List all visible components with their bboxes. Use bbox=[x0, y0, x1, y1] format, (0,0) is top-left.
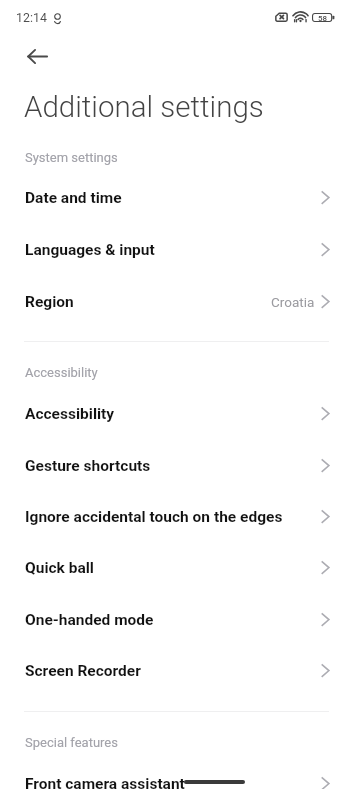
staticText: Additional settings bbox=[24, 90, 264, 125]
staticText: System settings bbox=[25, 150, 118, 165]
staticText: 12:14 bbox=[16, 10, 47, 25]
button[interactable]: Front camera assistant bbox=[0, 758, 355, 789]
staticText: Ignore accidental touch on the edges bbox=[25, 508, 283, 526]
staticText: One-handed mode bbox=[25, 611, 154, 629]
staticText: Accessibility bbox=[25, 365, 98, 380]
button[interactable]: Screen Recorder bbox=[0, 645, 355, 697]
staticText: Croatia bbox=[271, 294, 315, 310]
staticText: Screen Recorder bbox=[25, 662, 141, 680]
staticText: Quick ball bbox=[25, 559, 94, 577]
staticText: Gesture shortcuts bbox=[25, 457, 151, 475]
staticText: Accessibility bbox=[25, 405, 115, 423]
button[interactable]: Date and time bbox=[0, 172, 355, 224]
staticText: Languages & input bbox=[25, 241, 155, 259]
button[interactable]: Gesture shortcuts bbox=[0, 440, 355, 492]
staticText: Front camera assistant bbox=[25, 775, 185, 789]
button[interactable]: Accessibility bbox=[0, 388, 355, 440]
button[interactable]: Languages & input bbox=[0, 224, 355, 276]
button[interactable]: Quick ball bbox=[0, 542, 355, 594]
staticText: 58 bbox=[318, 14, 328, 23]
button[interactable]: One-handed mode bbox=[0, 594, 355, 646]
button[interactable]: Region bbox=[0, 276, 355, 328]
staticText: Special features bbox=[25, 735, 118, 750]
button[interactable]: Back bbox=[13, 34, 61, 79]
button[interactable]: Ignore accidental touch on the edges bbox=[0, 491, 355, 543]
staticText: Date and time bbox=[25, 189, 122, 207]
staticText: Region bbox=[25, 293, 74, 311]
